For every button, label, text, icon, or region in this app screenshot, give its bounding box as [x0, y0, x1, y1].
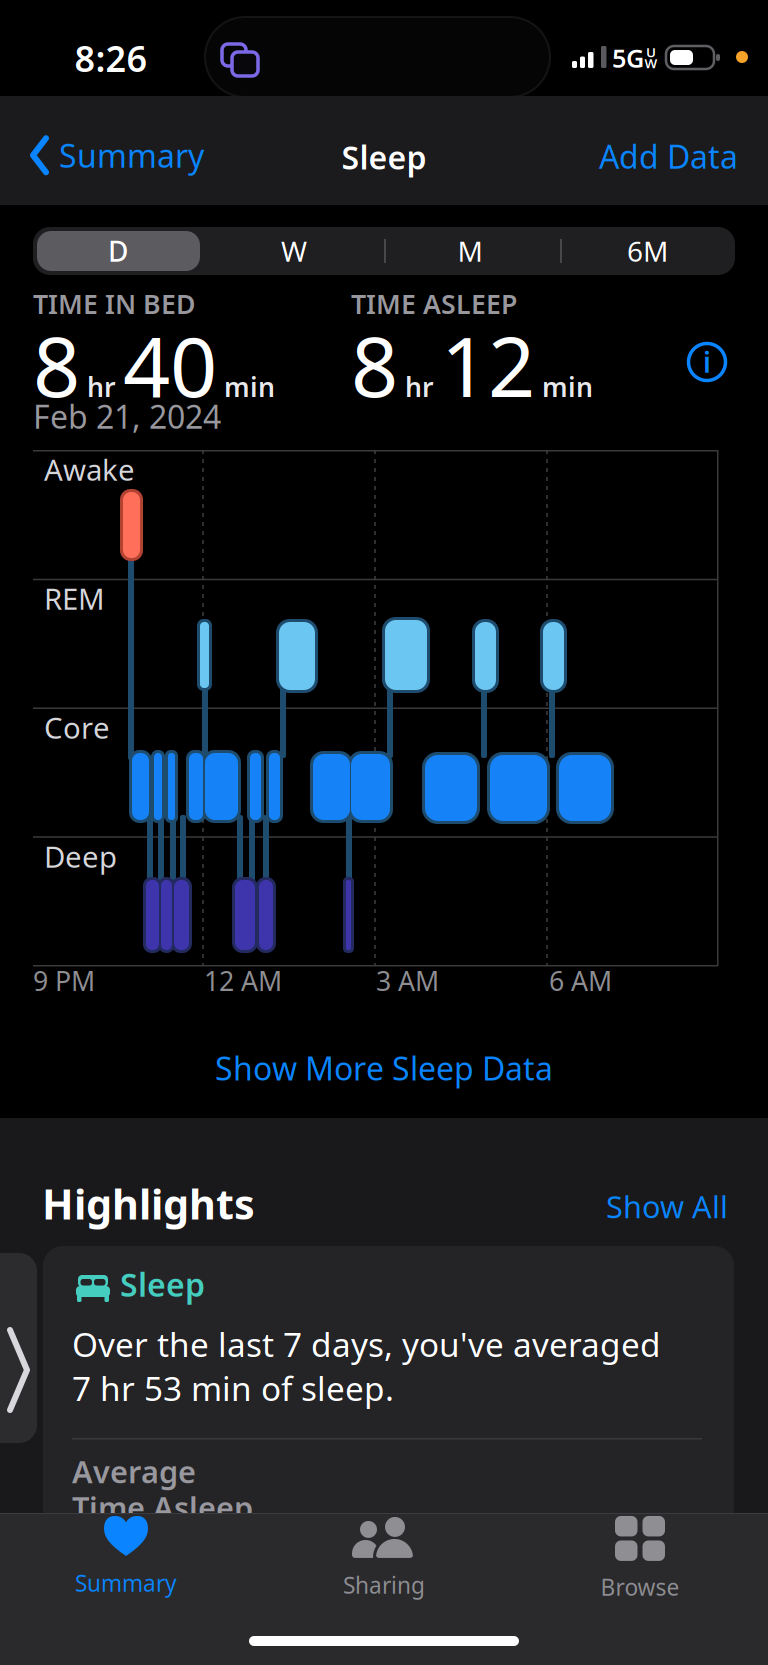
staticText: Browse	[600, 1572, 679, 1602]
button[interactable]: About Sleep Data	[687, 342, 727, 382]
staticText: Average	[72, 1451, 196, 1492]
staticText: Time Asleep	[72, 1487, 253, 1528]
button[interactable]: Summary	[31, 134, 204, 176]
staticText: 8	[351, 310, 398, 420]
staticText: 8	[33, 310, 80, 420]
staticText: Show All	[606, 1186, 728, 1227]
button[interactable]: Browse	[600, 1516, 679, 1602]
button[interactable]: Show More Sleep Data	[215, 1047, 553, 1089]
staticText: Over the last 7 days, you've averaged	[72, 1322, 661, 1366]
button[interactable]: 6M	[560, 227, 735, 275]
button[interactable]: M	[384, 227, 556, 275]
staticText: TIME IN BED	[33, 286, 196, 321]
staticText: Highlights	[42, 1176, 255, 1231]
staticText: M	[457, 232, 482, 270]
staticText: W	[644, 54, 657, 72]
staticText: REM	[44, 579, 105, 618]
staticText: hr	[405, 369, 434, 404]
button[interactable]: Previous highlight	[0, 1253, 37, 1443]
staticText: Show More Sleep Data	[215, 1047, 553, 1089]
staticText: 12	[441, 310, 535, 420]
staticText: hr	[87, 369, 116, 404]
staticText: 12 AM	[204, 963, 282, 998]
staticText: Feb 21, 2024	[33, 395, 221, 437]
staticText: 6 AM	[549, 963, 612, 998]
staticText: i	[703, 343, 711, 381]
staticText: W	[281, 232, 307, 270]
staticText: Core	[44, 708, 110, 747]
button[interactable]: Sleep	[43, 1246, 734, 1560]
staticText: TIME ASLEEP	[351, 286, 517, 321]
staticText: min	[542, 369, 593, 404]
staticText: Add Data	[599, 135, 738, 177]
staticText: D	[108, 232, 128, 270]
button[interactable]: W	[206, 227, 382, 275]
staticText: 8:26	[74, 34, 147, 82]
staticText: Sleep	[341, 136, 426, 178]
staticText: U	[646, 43, 656, 61]
staticText: Sleep	[120, 1263, 205, 1305]
staticText: Deep	[44, 837, 117, 876]
staticText: 40	[123, 310, 217, 420]
staticText: 7 hr 53 min of sleep.	[72, 1366, 394, 1410]
button[interactable]: Show All	[606, 1186, 728, 1227]
staticText: 6M	[627, 232, 668, 270]
staticText: 3 AM	[376, 963, 439, 998]
staticText: Sharing	[343, 1570, 425, 1600]
staticText: min	[224, 369, 275, 404]
button[interactable]: Summary	[75, 1516, 177, 1598]
button[interactable]: D	[36, 227, 200, 275]
staticText: 9 PM	[33, 963, 95, 998]
button[interactable]: Add Data	[599, 135, 738, 177]
staticText: Summary	[59, 134, 204, 176]
staticText: 5G	[612, 41, 644, 75]
staticText: Awake	[44, 450, 135, 489]
button[interactable]: Sharing	[343, 1516, 425, 1600]
staticText: Summary	[75, 1568, 177, 1598]
